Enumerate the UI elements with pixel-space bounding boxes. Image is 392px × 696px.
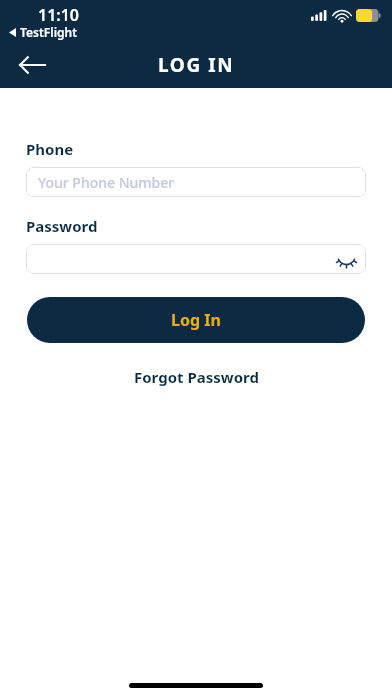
button[interactable]: Show password: [334, 247, 358, 271]
button[interactable]: Forgot Password: [126, 364, 267, 390]
staticText: Log In: [171, 309, 221, 331]
staticText: LOG IN: [158, 52, 235, 78]
staticText: Forgot Password: [134, 367, 259, 387]
button[interactable]: Show password: [26, 244, 366, 274]
button[interactable]: Log In: [27, 297, 365, 343]
staticText: Phone: [26, 139, 74, 159]
staticText: Password: [26, 216, 98, 236]
button[interactable]: Your Phone Number: [26, 167, 366, 197]
staticText: Your Phone Number: [38, 173, 175, 192]
staticText: TestFlight: [20, 24, 78, 40]
staticText: 11:10: [38, 4, 80, 26]
button[interactable]: Back: [10, 43, 54, 87]
